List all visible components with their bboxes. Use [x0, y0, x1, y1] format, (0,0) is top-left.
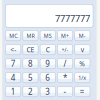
button[interactable]: M- — [75, 30, 90, 41]
staticText: 1 — [11, 86, 16, 97]
button[interactable]: +/- — [57, 44, 73, 55]
staticText: 4 — [11, 72, 16, 83]
button[interactable]: <- — [5, 44, 21, 55]
staticText: 7 — [11, 58, 16, 69]
button[interactable]: v — [75, 44, 90, 55]
staticText: M- — [79, 32, 86, 39]
staticText: = — [80, 86, 85, 97]
button[interactable]: MC — [5, 30, 21, 41]
button[interactable]: 7 — [5, 58, 21, 69]
button[interactable]: 3 — [40, 86, 55, 97]
staticText: M+ — [61, 32, 69, 39]
button[interactable]: 5 — [23, 72, 38, 83]
button[interactable]: % — [75, 58, 90, 69]
button[interactable]: C — [40, 44, 55, 55]
staticText: 8 — [28, 58, 33, 69]
staticText: MS — [44, 32, 52, 39]
staticText: / — [64, 58, 67, 69]
button[interactable]: 4 — [5, 72, 21, 83]
staticText: 1/x — [78, 74, 86, 81]
staticText: - — [64, 86, 67, 97]
staticText: CE — [26, 45, 34, 54]
staticText: % — [79, 59, 85, 68]
staticText: MR — [26, 32, 34, 39]
button[interactable]: = — [75, 86, 90, 97]
staticText: 5 — [28, 72, 33, 83]
button[interactable]: MS — [40, 30, 55, 41]
staticText: * — [63, 72, 67, 83]
button[interactable]: - — [57, 86, 73, 97]
button[interactable]: 9 — [40, 58, 55, 69]
staticText: 3 — [45, 86, 50, 97]
button[interactable]: 1/x — [75, 72, 90, 83]
staticText: 9 — [45, 58, 50, 69]
staticText: v — [81, 45, 84, 54]
button[interactable]: 6 — [40, 72, 55, 83]
button[interactable]: * — [57, 72, 73, 83]
button[interactable]: M+ — [57, 30, 73, 41]
button[interactable]: 8 — [23, 58, 38, 69]
button[interactable]: 2 — [23, 86, 38, 97]
button[interactable]: 1 — [5, 86, 21, 97]
staticText: 7777777 — [55, 12, 90, 24]
staticText: <- — [10, 45, 16, 54]
button[interactable]: MR — [23, 30, 38, 41]
button[interactable]: / — [57, 58, 73, 69]
staticText: 6 — [45, 72, 50, 83]
staticText: MC — [9, 32, 17, 39]
button[interactable]: CE — [23, 44, 38, 55]
staticText: 2 — [28, 86, 33, 97]
staticText: +/- — [62, 46, 69, 53]
staticText: C — [46, 45, 50, 54]
